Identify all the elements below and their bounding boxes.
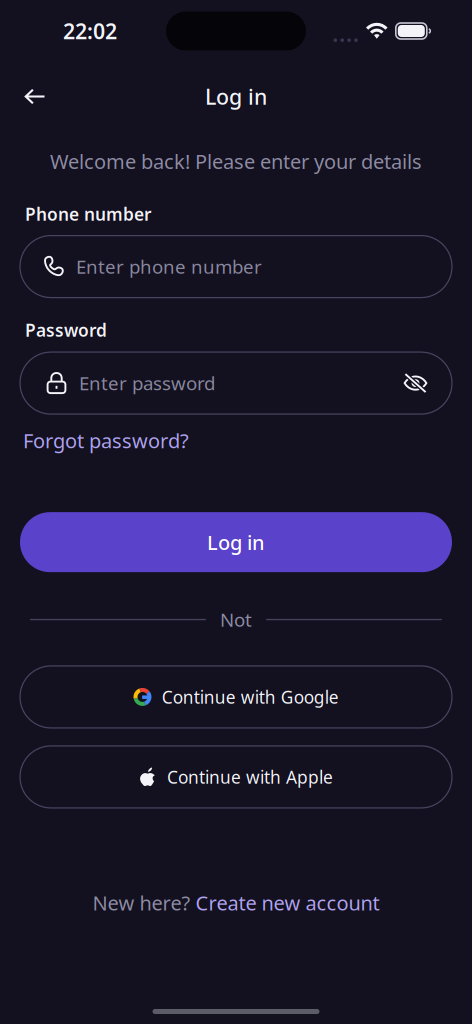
staticText: Continue with Apple [167, 765, 333, 788]
staticText: Log in [207, 529, 265, 555]
staticText: Forgot password? [23, 427, 189, 454]
staticText: Create new account [195, 889, 379, 916]
staticText: Password [25, 319, 107, 342]
button[interactable]: Continue with Apple [20, 746, 452, 808]
button[interactable]: Back [12, 75, 58, 117]
staticText: Continue with Google [162, 685, 339, 708]
staticText: Not [220, 607, 252, 632]
button[interactable]: Create new account [195, 889, 379, 916]
staticText: 22:02 [63, 17, 117, 45]
staticText: Enter password [79, 371, 215, 395]
staticText: Welcome back! Please enter your details [50, 148, 422, 175]
button[interactable]: Log in [20, 512, 452, 572]
staticText: New here? [92, 889, 195, 916]
staticText: Phone number [25, 203, 152, 226]
button[interactable]: Forgot password? [23, 427, 189, 454]
staticText: Log in [205, 82, 267, 111]
button[interactable]: Show password [403, 372, 452, 394]
staticText: Enter phone number [76, 254, 262, 279]
button[interactable]: Continue with Google [20, 666, 452, 728]
